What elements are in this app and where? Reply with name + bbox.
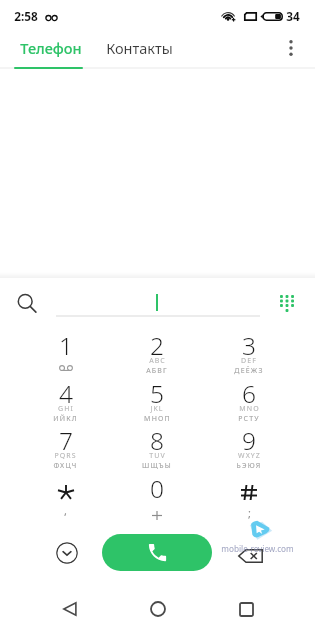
staticText: 7 bbox=[59, 424, 73, 457]
staticText: 34 bbox=[286, 8, 300, 24]
staticText: 0 bbox=[150, 472, 164, 505]
button[interactable]: 6 bbox=[203, 378, 295, 425]
staticText: 5 bbox=[150, 377, 164, 410]
button[interactable]: Dialpad bbox=[273, 289, 301, 317]
staticText: 2 bbox=[150, 329, 164, 362]
staticText: 9 bbox=[242, 424, 256, 457]
button[interactable]: Home bbox=[140, 591, 176, 627]
staticText: TUV bbox=[149, 451, 166, 461]
button[interactable]: Телефон bbox=[0, 30, 94, 65]
button[interactable]: More options bbox=[271, 30, 311, 65]
button[interactable]: , bbox=[20, 473, 111, 520]
staticText: 3 bbox=[242, 329, 256, 362]
staticText: 2:58 bbox=[14, 8, 38, 24]
staticText: ДЕЁЖЗ bbox=[234, 366, 264, 376]
button[interactable]: 5 bbox=[111, 378, 203, 425]
button[interactable]: Delete bbox=[235, 540, 265, 572]
staticText: , bbox=[64, 503, 67, 518]
staticText: mobile-review.com bbox=[221, 543, 294, 554]
staticText: 6 bbox=[242, 377, 256, 410]
staticText: АБВГ bbox=[146, 366, 168, 376]
staticText: Контакты bbox=[106, 38, 173, 58]
button[interactable]: ; bbox=[203, 473, 295, 520]
button[interactable]: 0 bbox=[111, 473, 203, 520]
staticText: 8 bbox=[150, 424, 164, 457]
staticText: ABC bbox=[149, 356, 166, 366]
staticText: GHI bbox=[58, 404, 74, 414]
staticText: Телефон bbox=[20, 38, 82, 58]
button[interactable]: Expand bbox=[56, 542, 78, 564]
staticText: 4 bbox=[59, 377, 73, 410]
staticText: ИЙКЛ bbox=[53, 414, 78, 424]
button[interactable]: 2 bbox=[111, 330, 203, 377]
staticText: MNO bbox=[239, 404, 260, 414]
staticText: МНОП bbox=[144, 414, 171, 424]
button[interactable]: 9 bbox=[203, 425, 295, 472]
staticText: РСТУ bbox=[238, 414, 260, 424]
button[interactable]: Recents bbox=[228, 591, 264, 627]
button[interactable]: 8 bbox=[111, 425, 203, 472]
button[interactable]: 4 bbox=[20, 378, 111, 425]
button[interactable]: 7 bbox=[20, 425, 111, 472]
staticText: ФХЦЧ bbox=[53, 461, 78, 471]
staticText: 1 bbox=[59, 329, 73, 362]
staticText: JKL bbox=[150, 404, 164, 414]
button[interactable]: Back bbox=[52, 591, 88, 627]
button[interactable]: Search bbox=[12, 289, 40, 317]
staticText: PQRS bbox=[54, 451, 77, 461]
button[interactable]: 1 bbox=[20, 330, 111, 377]
button[interactable]: Контакты bbox=[94, 30, 185, 65]
staticText: ЬЭЮЯ bbox=[236, 461, 262, 471]
button[interactable]: Call bbox=[102, 534, 212, 571]
button[interactable]: 3 bbox=[203, 330, 295, 377]
staticText: WXYZ bbox=[238, 451, 261, 461]
staticText: DEF bbox=[241, 356, 257, 366]
staticText: ; bbox=[248, 505, 251, 520]
staticText: ШЩЪЫ bbox=[142, 461, 172, 471]
